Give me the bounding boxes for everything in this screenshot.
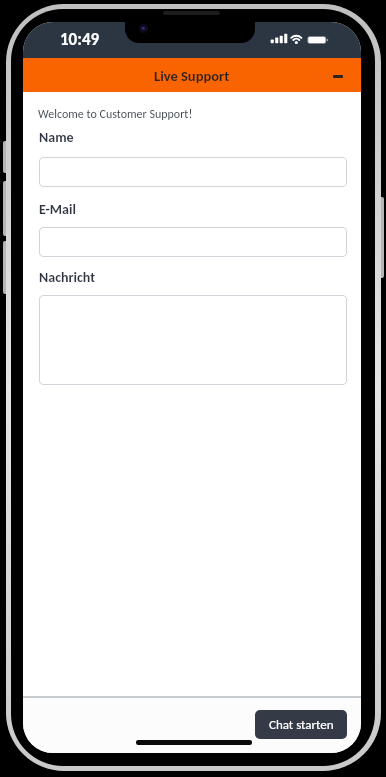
button[interactable]: [39, 295, 347, 385]
staticText: Live Support: [154, 67, 230, 85]
button[interactable]: [39, 227, 347, 257]
staticText: Name: [39, 129, 74, 146]
staticText: E-Mail: [39, 201, 76, 218]
button[interactable]: [333, 75, 343, 78]
staticText: Nachricht: [39, 269, 96, 286]
button[interactable]: [39, 157, 347, 187]
staticText: Chat starten: [269, 717, 334, 733]
staticText: Welcome to Customer Support!: [38, 107, 193, 122]
staticText: 10:49: [60, 29, 100, 50]
button[interactable]: Chat starten: [255, 710, 347, 739]
